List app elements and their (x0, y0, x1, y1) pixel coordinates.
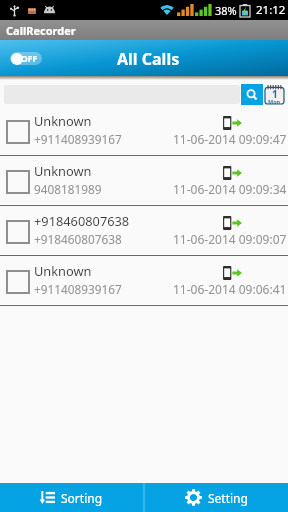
button[interactable]: Search (241, 84, 263, 105)
staticText: Unknown (34, 162, 92, 179)
staticText: Sorting (61, 490, 103, 506)
staticText: Unknown (34, 262, 92, 279)
button[interactable]: Unknown (0, 156, 288, 206)
staticText: 11-06-2014 09:06:41 (173, 281, 287, 297)
staticText: 21:12 (256, 2, 286, 18)
button[interactable]: Unknown (0, 106, 288, 156)
staticText: Setting (208, 490, 248, 506)
button[interactable]: Sorting (0, 483, 143, 512)
button[interactable]: Pick date (265, 85, 284, 104)
staticText: 1 (272, 87, 278, 101)
staticText: 9408181989 (34, 181, 102, 197)
staticText: 11-06-2014 09:09:47 (173, 131, 287, 147)
staticText: 11-06-2014 09:09:34 (173, 181, 287, 197)
staticText: 38% (215, 3, 237, 18)
button[interactable]: Unknown (0, 256, 288, 306)
staticText: OFF (21, 53, 38, 65)
staticText: CallRecorder (6, 23, 76, 38)
button[interactable]: +918460807638 (0, 206, 288, 256)
staticText: +918460807638 (34, 231, 122, 247)
staticText: +911408939167 (34, 281, 122, 297)
staticText: +918460807638 (34, 212, 130, 229)
staticText: +911408939167 (34, 131, 122, 147)
button[interactable]: Setting (145, 483, 288, 512)
staticText: 11-06-2014 09:09:07 (173, 231, 287, 247)
staticText: Mon (268, 98, 281, 105)
button[interactable]: Recording toggle off (10, 52, 42, 65)
staticText: Unknown (34, 112, 92, 129)
staticText: All Calls (117, 48, 180, 70)
